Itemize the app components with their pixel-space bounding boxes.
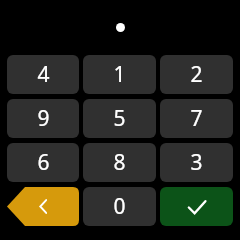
button[interactable]: 3 — [160, 143, 233, 182]
button[interactable]: 2 — [160, 55, 233, 94]
button[interactable]: 6 — [7, 143, 79, 182]
button[interactable]: 5 — [83, 99, 156, 138]
staticText: 5 — [113, 104, 126, 133]
staticText: 1 — [113, 60, 126, 89]
staticText: 7 — [190, 104, 203, 133]
staticText: 2 — [190, 60, 203, 89]
button[interactable]: 8 — [83, 143, 156, 182]
button[interactable]: Confirm — [160, 187, 233, 226]
staticText: 9 — [37, 104, 50, 133]
staticText: 0 — [113, 192, 126, 221]
button[interactable]: Backspace — [7, 187, 79, 226]
button[interactable]: 0 — [83, 187, 156, 226]
staticText: 8 — [113, 148, 126, 177]
button[interactable]: 9 — [7, 99, 79, 138]
button[interactable]: 4 — [7, 55, 79, 94]
staticText: 4 — [37, 60, 50, 89]
button[interactable]: 7 — [160, 99, 233, 138]
staticText: 6 — [37, 148, 50, 177]
button[interactable]: 1 — [83, 55, 156, 94]
staticText: 3 — [190, 148, 203, 177]
